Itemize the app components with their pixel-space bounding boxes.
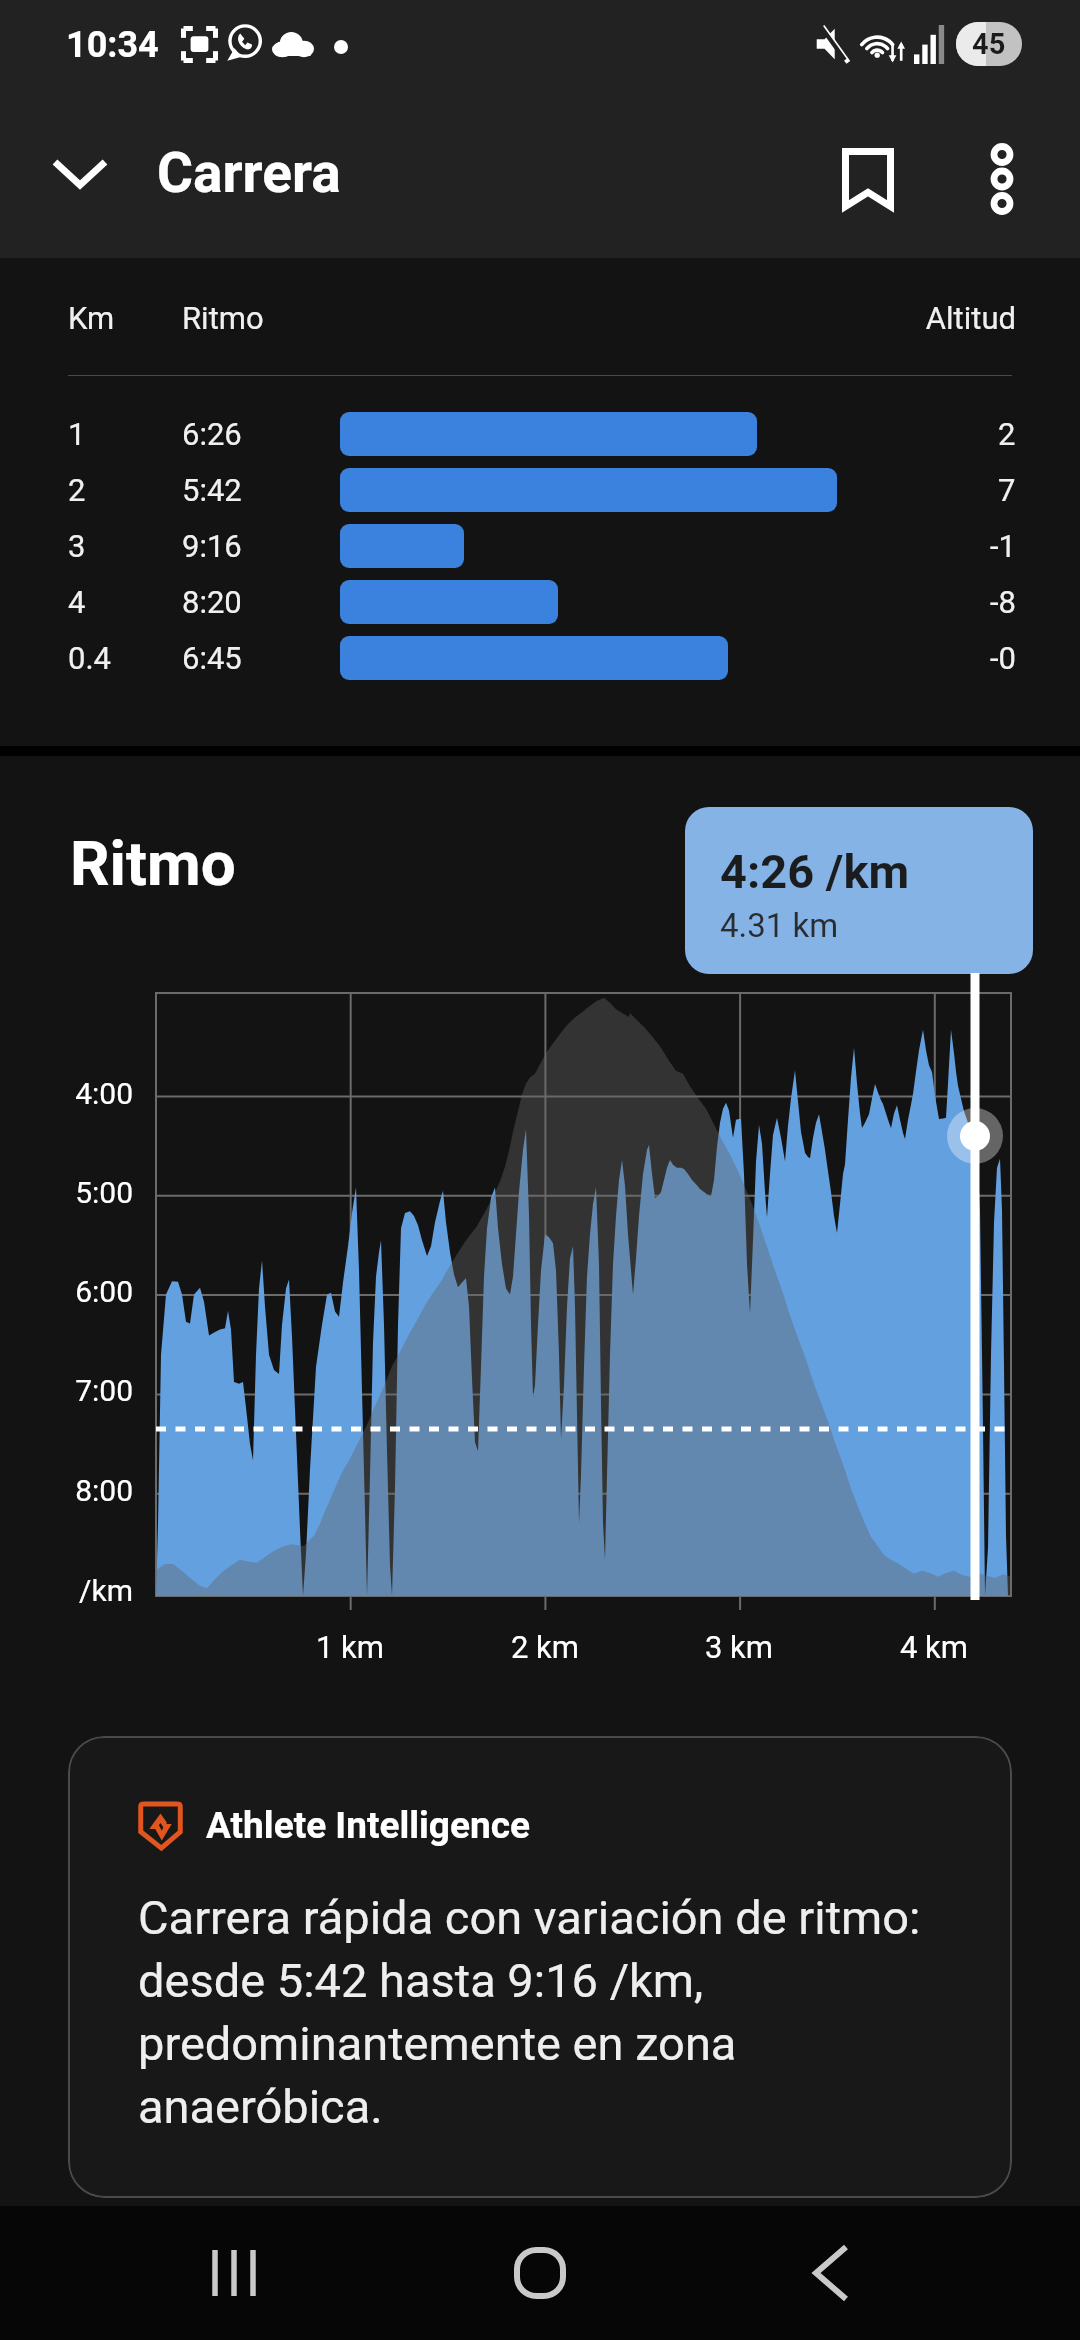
button[interactable]: Recent apps <box>174 2213 294 2333</box>
button[interactable]: 3 <box>0 518 1080 574</box>
button[interactable]: 4 <box>0 574 1080 630</box>
staticText: 6:26 <box>182 416 242 452</box>
staticText: Km <box>68 300 115 336</box>
staticText: 1 km <box>280 1629 420 1665</box>
staticText: 10:34 <box>66 24 159 66</box>
staticText: /km <box>0 1573 133 1608</box>
staticText: -8 <box>990 584 1016 620</box>
button[interactable]: More options <box>933 110 1071 248</box>
staticText: 2 km <box>475 1629 615 1665</box>
staticText: 45 <box>972 27 1006 61</box>
staticText: 5:42 <box>182 472 242 508</box>
staticText: 3 <box>68 528 86 564</box>
staticText: 2 <box>68 472 86 508</box>
staticText: 8:20 <box>182 584 242 620</box>
button[interactable]: Home <box>480 2213 600 2333</box>
staticText: Altitud <box>0 300 1016 336</box>
staticText: -0 <box>990 640 1016 676</box>
button[interactable]: 1 <box>0 406 1080 462</box>
button[interactable]: Bookmark <box>799 110 937 248</box>
button[interactable]: Collapse <box>26 125 134 233</box>
button[interactable]: 0.4 <box>0 630 1080 686</box>
staticText: 7 <box>998 472 1016 508</box>
staticText: 4:26 /km <box>720 844 910 899</box>
staticText: Ritmo <box>70 827 236 900</box>
staticText: 3 km <box>669 1629 809 1665</box>
staticText: 0.4 <box>68 640 112 676</box>
staticText: Carrera rápida con variación de ritmo: d… <box>138 1890 938 2134</box>
staticText: 1 <box>68 416 86 452</box>
staticText: 4:00 <box>0 1076 133 1111</box>
button[interactable]: 2 <box>0 462 1080 518</box>
staticText: Athlete Intelligence <box>206 1804 530 1847</box>
staticText: Carrera <box>157 141 341 205</box>
staticText: 7:00 <box>0 1373 133 1408</box>
button[interactable]: 4:26 /km <box>685 807 1033 974</box>
staticText: 4 km <box>864 1629 1004 1665</box>
staticText: -1 <box>990 528 1016 564</box>
staticText: 8:00 <box>0 1473 133 1508</box>
staticText: Ritmo <box>182 300 264 336</box>
staticText: 4.31 km <box>720 906 839 945</box>
staticText: 6:45 <box>182 640 242 676</box>
button[interactable]: Athlete Intelligence <box>68 1736 1012 2198</box>
staticText: 5:00 <box>0 1175 133 1210</box>
staticText: 9:16 <box>182 528 242 564</box>
staticText: 6:00 <box>0 1274 133 1309</box>
button[interactable]: Back <box>771 2213 891 2333</box>
staticText: 2 <box>998 416 1016 452</box>
staticText: 4 <box>68 584 86 620</box>
